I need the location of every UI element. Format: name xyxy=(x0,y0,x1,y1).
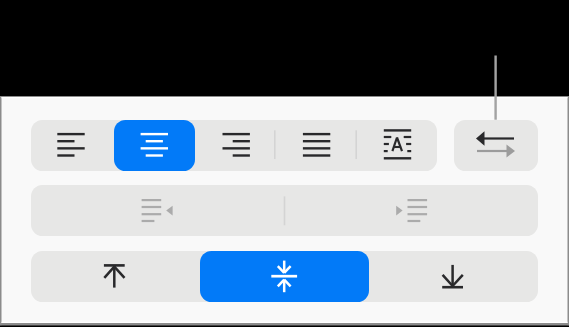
button[interactable]: Align left xyxy=(31,120,114,171)
button[interactable]: Align center xyxy=(114,120,195,171)
button[interactable]: Justify xyxy=(276,120,357,171)
button[interactable]: Increase indent xyxy=(285,185,539,236)
button[interactable]: Align top xyxy=(31,251,200,302)
button[interactable]: Align bottom xyxy=(369,251,538,302)
button[interactable]: Align middle xyxy=(200,251,369,302)
button[interactable]: Text options xyxy=(356,120,437,171)
button[interactable]: Text direction xyxy=(454,120,538,171)
button[interactable]: Decrease indent xyxy=(31,185,285,236)
button[interactable]: Align right xyxy=(195,120,276,171)
